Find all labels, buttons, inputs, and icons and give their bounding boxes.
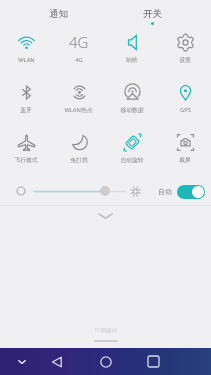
button[interactable]: 飞行模式 <box>0 126 52 176</box>
button[interactable]: 自动亮度开关 <box>177 185 205 199</box>
button[interactable]: WLAN热点 <box>52 76 105 126</box>
button[interactable]: 4G <box>52 26 105 76</box>
button[interactable]: 最低亮度 <box>16 186 26 196</box>
button[interactable]: 响铃 <box>105 26 158 76</box>
button[interactable]: GPS <box>158 76 211 126</box>
staticText: WLAN <box>18 56 35 64</box>
staticText: 开关 <box>143 8 162 20</box>
button[interactable]: 返回 <box>39 348 75 375</box>
staticText: 响铃 <box>126 56 138 63</box>
button[interactable]: 通知 <box>35 0 82 26</box>
button[interactable]: 移动数据 <box>105 76 158 126</box>
staticText: 免打扰 <box>70 156 88 163</box>
staticText: 自动 <box>158 187 172 196</box>
button[interactable]: 主屏幕 <box>87 348 124 375</box>
button[interactable]: 最高亮度 <box>130 186 141 197</box>
staticText: 4G <box>69 32 89 52</box>
staticText: GPS <box>180 106 191 114</box>
staticText: 蓝牙 <box>20 106 32 113</box>
button[interactable]: 截屏 <box>158 126 211 176</box>
button[interactable]: WLAN <box>0 26 52 76</box>
button[interactable]: 收起 <box>0 206 211 225</box>
staticText: 设置 <box>179 56 191 63</box>
button[interactable]: 免打扰 <box>52 126 105 176</box>
staticText: 截屏 <box>179 156 191 163</box>
button[interactable]: 最近任务 <box>135 348 171 375</box>
staticText: 4G <box>75 56 83 64</box>
staticText: 飞行模式 <box>14 156 38 163</box>
staticText: WLAN热点 <box>64 106 93 114</box>
staticText: 中国移动 <box>95 327 117 334</box>
staticText: 通知 <box>49 8 68 20</box>
button[interactable]: 开关 <box>129 0 176 26</box>
button[interactable]: 蓝牙 <box>0 76 52 126</box>
staticText: 移动数据 <box>120 106 144 113</box>
staticText: 自动旋转 <box>120 156 144 163</box>
button[interactable]: 自动旋转 <box>105 126 158 176</box>
button[interactable]: 设置 <box>158 26 211 76</box>
button[interactable]: 隐藏导航栏 <box>8 348 35 375</box>
